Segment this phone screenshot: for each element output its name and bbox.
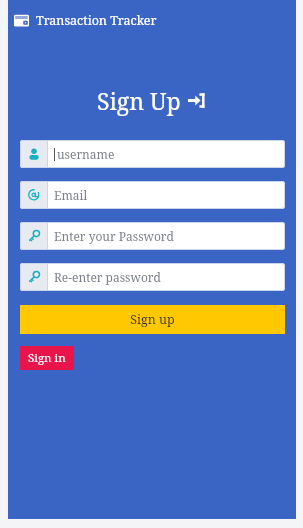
staticText: Sign in	[28, 350, 66, 366]
staticText: Enter your Password	[54, 228, 174, 244]
button[interactable]: Email	[20, 181, 285, 209]
staticText: Re-enter password	[54, 269, 161, 285]
button[interactable]: username	[20, 140, 285, 168]
button[interactable]: Sign in	[20, 346, 74, 370]
other: Sign up	[188, 91, 207, 110]
button[interactable]: Enter your Password	[20, 222, 285, 250]
button[interactable]: Re-enter password	[20, 263, 285, 291]
button[interactable]: Wallet	[8, 0, 296, 40]
staticText: Sign Up	[97, 85, 181, 116]
staticText: Sign up	[130, 311, 175, 328]
staticText: username	[57, 146, 115, 162]
other: Wallet	[14, 13, 29, 28]
staticText: Transaction Tracker	[36, 12, 157, 29]
staticText: Email	[54, 187, 88, 203]
button[interactable]: Sign up	[20, 305, 285, 334]
